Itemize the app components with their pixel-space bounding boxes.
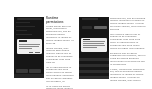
staticText: tion ullamco laboris nisi ut aliquip ex …: [110, 32, 146, 50]
staticText: lor in reprehenderit in voluptate velit …: [46, 65, 74, 83]
staticText: nt in culpa qui officia deserunt mollit …: [46, 84, 74, 89]
button[interactable]: [94, 26, 107, 29]
staticText: Excepteur sint occaecat cupidatat non pr…: [110, 51, 146, 66]
staticText: t amet, consectetur adipiscing elit, sed…: [110, 67, 146, 82]
staticText: minim veniam, quis nostrud exercitation …: [46, 46, 74, 64]
staticText: Runtime permissions: [46, 16, 64, 23]
staticText: Lorem ipsum dolor sit amet, consectetur …: [46, 24, 74, 45]
button[interactable]: Screenshot: permission request dialog: [14, 17, 44, 78]
button[interactable]: Screenshot: permissions list: [79, 17, 109, 76]
staticText: adipiscing elit, sed do eiusmod tempor i…: [110, 16, 146, 31]
